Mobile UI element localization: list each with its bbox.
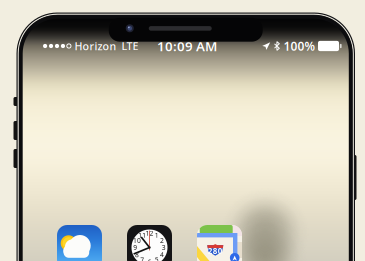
staticText: 5 bbox=[155, 255, 159, 261]
staticText: 11 bbox=[138, 231, 146, 240]
staticText: 3 bbox=[162, 243, 166, 252]
staticText: 100% bbox=[283, 38, 315, 54]
staticText: 4 bbox=[160, 250, 164, 259]
staticText: 1 bbox=[155, 231, 159, 240]
button[interactable]: Clock bbox=[127, 225, 172, 261]
button[interactable]: Weather bbox=[57, 225, 102, 261]
staticText: 280 bbox=[208, 246, 223, 256]
staticText: 6 bbox=[147, 257, 151, 261]
staticText: 7 bbox=[140, 255, 144, 261]
staticText: 8 bbox=[135, 250, 139, 259]
staticText: 9 bbox=[133, 243, 137, 252]
staticText: 12 bbox=[145, 229, 153, 238]
button[interactable]: Maps bbox=[197, 225, 242, 261]
staticText: 2 bbox=[160, 236, 164, 245]
staticText: 10:09 AM bbox=[157, 37, 217, 55]
staticText: 10 bbox=[133, 236, 141, 245]
staticText: Horizon bbox=[74, 39, 116, 53]
staticText: LTE bbox=[121, 39, 138, 53]
